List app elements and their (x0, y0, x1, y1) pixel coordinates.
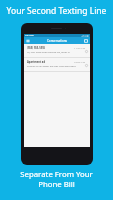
staticText: Apartment ad (27, 60, 46, 64)
staticText: Thanks to all again the pay that data da… (27, 64, 78, 67)
other: Menu (26, 39, 30, 43)
staticText: (555) 555-5555 (27, 46, 46, 50)
staticText: 11:24 AM (74, 46, 85, 49)
button[interactable]: Menu (24, 37, 90, 44)
staticText: Phone Bill (0, 179, 113, 190)
staticText: Call Free (25, 34, 34, 37)
staticText: Hi, you have seen posted ad, what is qua… (27, 50, 78, 53)
other: New message (84, 39, 88, 43)
button[interactable]: (555) 555-5555 (24, 44, 90, 58)
staticText: Your Second Texting Line (0, 5, 113, 17)
staticText: 10:02 AM (74, 60, 85, 63)
staticText: Separate From Your (0, 169, 113, 180)
button[interactable]: Apartment ad (24, 58, 90, 72)
staticText: Conversations (30, 39, 84, 43)
